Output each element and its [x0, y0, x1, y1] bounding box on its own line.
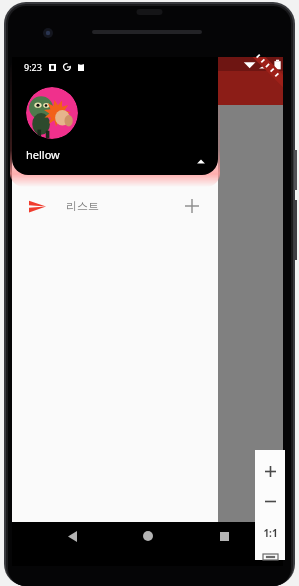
- button[interactable]: Profile avatar: [26, 87, 78, 139]
- button[interactable]: Collapse: [194, 155, 208, 169]
- staticText: 1:1: [263, 526, 278, 540]
- staticText: 9:23: [24, 61, 42, 73]
- staticText: 리스트: [66, 199, 99, 213]
- button[interactable]: 1:1: [263, 526, 278, 540]
- button[interactable]: Send: [26, 195, 48, 217]
- button[interactable]: Zoom in: [259, 460, 281, 482]
- button[interactable]: hellow: [26, 147, 60, 162]
- button[interactable]: Back: [60, 524, 84, 548]
- button[interactable]: Recents: [212, 524, 236, 548]
- button[interactable]: Home: [136, 524, 160, 548]
- button[interactable]: Zoom out: [259, 490, 281, 512]
- button[interactable]: Fit to screen: [261, 554, 279, 560]
- button[interactable]: 리스트: [66, 199, 99, 213]
- staticText: hellow: [26, 147, 60, 162]
- button[interactable]: Add: [180, 194, 204, 218]
